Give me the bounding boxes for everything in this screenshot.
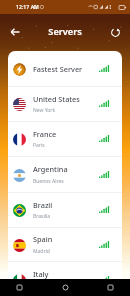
staticText: Fastest Server	[33, 64, 83, 74]
staticText: New York	[33, 107, 56, 114]
button[interactable]: Refresh	[105, 22, 125, 42]
staticText: 12:17 AM	[16, 3, 39, 10]
staticText: Brasilia	[33, 213, 51, 220]
button[interactable]: Spain	[8, 228, 122, 262]
staticText: United States	[33, 94, 80, 104]
staticText: France	[33, 129, 57, 139]
staticText: Brazil	[33, 200, 53, 210]
staticText: Paris	[33, 142, 45, 149]
button[interactable]: United States	[8, 87, 122, 122]
button[interactable]: Italy	[8, 262, 122, 279]
staticText: Buenos Aires	[33, 178, 64, 185]
button[interactable]: Fastest Server	[8, 51, 122, 87]
button[interactable]: Recents	[102, 279, 119, 296]
staticText: Spain	[33, 234, 53, 244]
button[interactable]: Back	[11, 279, 28, 296]
button[interactable]: Back	[5, 22, 25, 42]
staticText: Italy	[33, 269, 49, 279]
staticText: Madrid	[33, 248, 50, 255]
button[interactable]: France	[8, 122, 122, 157]
button[interactable]: Home	[57, 279, 74, 296]
button[interactable]: Brazil	[8, 193, 122, 228]
button[interactable]: Argentina	[8, 157, 122, 193]
staticText: Argentina	[33, 164, 68, 174]
staticText: Servers	[48, 25, 82, 38]
